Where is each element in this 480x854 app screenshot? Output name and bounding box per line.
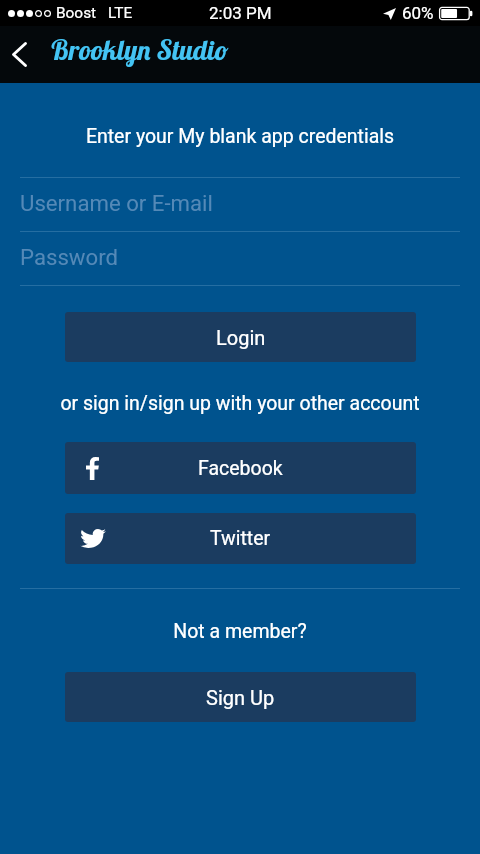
staticText: Login bbox=[216, 326, 266, 349]
staticText: Sign Up bbox=[206, 686, 275, 709]
staticText: LTE bbox=[108, 4, 133, 22]
button[interactable]: Facebook bbox=[65, 442, 416, 494]
button[interactable]: Sign Up bbox=[65, 672, 416, 722]
staticText: Boost bbox=[56, 4, 97, 22]
staticText: Facebook bbox=[198, 457, 283, 480]
staticText: Not a member? bbox=[0, 620, 480, 643]
staticText: 2:03 PM bbox=[209, 3, 272, 23]
staticText: Password bbox=[20, 244, 119, 270]
staticText: 60% bbox=[402, 3, 434, 23]
staticText: Brooklyn Studio bbox=[50, 33, 228, 67]
staticText: Username or E-mail bbox=[20, 190, 213, 216]
button[interactable]: Login bbox=[65, 312, 416, 362]
staticText: Twitter bbox=[210, 527, 271, 550]
staticText: or sign in/sign up with your other accou… bbox=[0, 392, 480, 415]
button[interactable]: Password bbox=[20, 232, 460, 285]
staticText: Enter your My blank app credentials bbox=[0, 125, 480, 148]
button[interactable]: Back bbox=[0, 31, 44, 79]
button[interactable]: Username or E-mail bbox=[20, 178, 460, 231]
button[interactable]: Twitter bbox=[65, 513, 416, 564]
